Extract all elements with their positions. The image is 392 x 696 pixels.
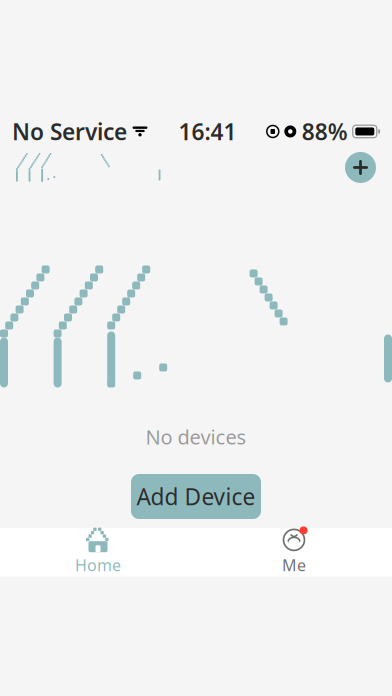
staticText: 16:41 — [178, 116, 236, 146]
button[interactable]: Add Device — [131, 474, 261, 519]
staticText: No Service — [12, 116, 127, 146]
staticText: No devices — [145, 423, 246, 450]
button[interactable]: Home — [43, 528, 153, 576]
staticText: Home — [75, 554, 121, 576]
staticText: Add Device — [136, 481, 255, 512]
staticText: Me — [282, 554, 306, 576]
button[interactable]: Me — [239, 528, 349, 576]
button[interactable]: Add device — [339, 146, 382, 189]
button[interactable]: Brand home logo — [10, 145, 166, 190]
staticText: 88% — [302, 116, 348, 146]
